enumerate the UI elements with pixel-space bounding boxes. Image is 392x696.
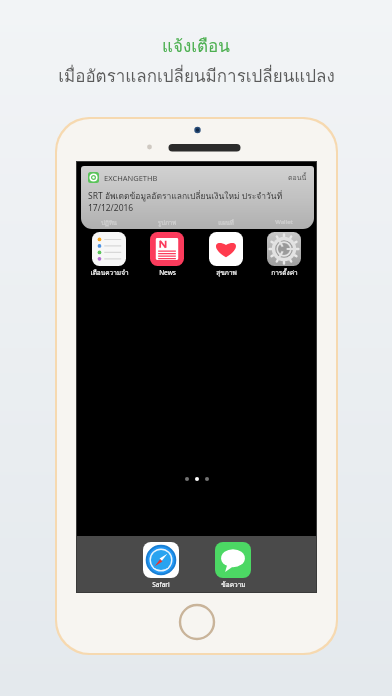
button[interactable]: สุขภาพ [199,232,253,278]
staticText: SRT อัพเดตข้อมูลอัตราแลกเปลี่ยนเงินใหม่ … [88,189,307,214]
button[interactable]: เตือนความจำ [82,232,136,278]
staticText: EXCHANGETHB [104,173,158,183]
staticText: Wallet [257,218,311,226]
button[interactable]: EXCHANGETHB [81,166,314,229]
button[interactable]: Safari [134,542,188,589]
staticText: สุขภาพ [216,268,237,278]
button[interactable]: Home [178,603,216,641]
button[interactable]: ข้อความ [206,542,260,590]
staticText: เมื่ออัตราแลกเปลี่ยนมีการเปลี่ยนแปลง [58,62,335,89]
staticText: News [159,268,176,277]
staticText: Safari [152,580,170,589]
staticText: แจ้งเตือน [162,32,230,59]
staticText: แผนที่ [199,218,253,228]
staticText: ข้อความ [221,580,246,590]
button[interactable]: การตั้งค่า [257,232,311,278]
staticText: เตือนความจำ [90,268,129,278]
button[interactable]: News [140,232,194,277]
staticText: การตั้งค่า [271,268,298,278]
staticText: ปฏิทิน [82,218,136,228]
staticText: รูปภาพ [140,218,194,228]
staticText: ตอนนี้ [288,172,307,183]
